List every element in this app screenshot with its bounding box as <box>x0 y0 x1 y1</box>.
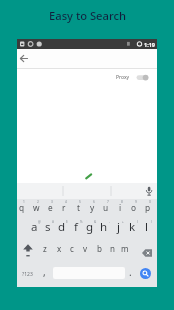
staticText: f <box>74 219 78 235</box>
button[interactable]: z <box>33 240 57 256</box>
button[interactable]: n <box>100 240 124 256</box>
staticText: j <box>117 219 120 235</box>
button[interactable]: y <box>80 199 104 215</box>
staticText: 0 <box>149 200 151 204</box>
staticText: a <box>31 219 38 235</box>
button[interactable]: h <box>92 219 116 235</box>
staticText: s <box>45 219 51 235</box>
button[interactable]: b <box>87 240 111 256</box>
button[interactable] <box>143 185 155 197</box>
staticText: b <box>97 243 102 254</box>
staticText: @ <box>38 220 41 224</box>
button[interactable]: r <box>52 199 76 215</box>
button[interactable]: f <box>64 219 88 235</box>
button[interactable]: e <box>38 199 62 215</box>
button[interactable]: k <box>120 219 144 235</box>
button[interactable]: i <box>108 199 132 215</box>
staticText: m <box>121 243 129 254</box>
staticText: # <box>52 220 54 224</box>
staticText: d <box>58 219 66 235</box>
staticText: n <box>110 243 115 254</box>
staticText: , <box>43 265 46 279</box>
button[interactable]: , <box>32 264 56 280</box>
button[interactable]: . <box>118 264 142 280</box>
staticText: 3 <box>51 200 53 204</box>
staticText: - <box>109 220 110 224</box>
button[interactable] <box>18 52 31 65</box>
staticText: Easy to Search <box>49 8 126 23</box>
button[interactable]: q <box>10 199 34 215</box>
staticText: k <box>129 219 136 235</box>
staticText: r <box>62 202 66 213</box>
staticText: Proxy <box>116 74 130 81</box>
staticText: 5 <box>79 200 81 204</box>
staticText: 2 <box>37 200 39 204</box>
staticText: % <box>80 220 83 224</box>
staticText: 1 <box>23 200 25 204</box>
button[interactable]: p <box>136 199 160 215</box>
button[interactable]: m <box>113 240 137 256</box>
staticText: h <box>100 219 108 235</box>
staticText: + <box>122 220 124 224</box>
staticText: e <box>48 202 53 213</box>
staticText: i <box>119 202 122 213</box>
button[interactable]: v <box>73 240 97 256</box>
button[interactable] <box>140 246 154 260</box>
button[interactable]: w <box>24 199 48 215</box>
staticText: q <box>19 202 25 213</box>
staticText: 9 <box>135 200 137 204</box>
button[interactable]: x <box>47 240 71 256</box>
button[interactable] <box>140 268 151 279</box>
button[interactable]: a <box>22 219 46 235</box>
staticText: & <box>94 220 97 224</box>
staticText: v <box>83 243 88 254</box>
staticText: 1:19 <box>144 41 155 48</box>
button[interactable]: l <box>134 219 158 235</box>
staticText: o <box>131 202 137 213</box>
staticText: 8 <box>121 200 123 204</box>
button[interactable]: c <box>60 240 84 256</box>
staticText: c <box>70 243 74 254</box>
staticText: y <box>90 202 95 213</box>
staticText: l <box>145 219 148 235</box>
button[interactable]: t <box>66 199 90 215</box>
staticText: 7 <box>107 200 109 204</box>
staticText: . <box>129 265 132 279</box>
button[interactable]: d <box>50 219 74 235</box>
staticText: t <box>77 202 80 213</box>
staticText: p <box>145 202 151 213</box>
staticText: w <box>33 202 40 213</box>
button[interactable]: Proxy <box>115 72 151 83</box>
staticText: x <box>57 243 62 254</box>
button[interactable]: g <box>78 219 102 235</box>
staticText: g <box>86 219 94 235</box>
button[interactable]: s <box>36 219 60 235</box>
staticText: u <box>103 202 109 213</box>
button[interactable]: j <box>106 219 130 235</box>
staticText: 4 <box>65 200 67 204</box>
button[interactable]: ?123 <box>15 266 39 282</box>
staticText: z <box>43 243 47 254</box>
staticText: ( <box>137 220 138 224</box>
staticText: ) <box>151 220 152 224</box>
staticText: ?123 <box>22 271 33 278</box>
staticText: 6 <box>93 200 95 204</box>
button[interactable]: u <box>94 199 118 215</box>
button[interactable] <box>21 243 36 258</box>
button[interactable]: o <box>122 199 146 215</box>
staticText: $ <box>66 220 68 224</box>
